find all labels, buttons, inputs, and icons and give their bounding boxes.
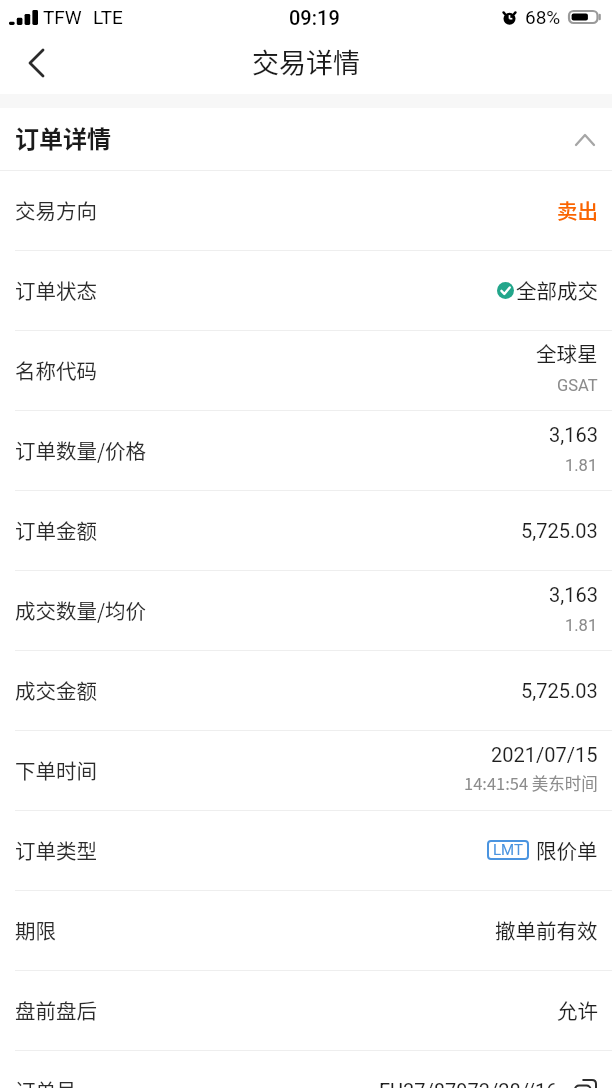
- staticText: 名称代码: [15, 355, 97, 385]
- staticText: 68%: [525, 6, 561, 28]
- staticText: 1.81: [565, 456, 598, 475]
- button[interactable]: Copy order number: [572, 1077, 598, 1088]
- staticText: 订单类型: [15, 835, 97, 865]
- staticText: 2021/07/15: [491, 743, 598, 766]
- button[interactable]: 期限: [0, 891, 612, 971]
- staticText: 1.81: [565, 616, 598, 635]
- staticText: 全球星: [536, 338, 598, 366]
- staticText: 盘前盘后: [15, 995, 97, 1025]
- staticText: GSAT: [557, 376, 598, 395]
- button[interactable]: Back: [0, 34, 60, 94]
- staticText: 09:19: [289, 6, 340, 29]
- staticText: 订单数量/价格: [15, 435, 147, 465]
- button[interactable]: Collapse order details: [563, 118, 607, 162]
- button[interactable]: 成交金额: [0, 651, 612, 731]
- staticText: FU37/87973/28//16: [379, 1079, 558, 1088]
- button[interactable]: 交易方向: [0, 171, 612, 251]
- staticText: 3,163: [549, 583, 598, 606]
- button[interactable]: 订单金额: [0, 491, 612, 571]
- staticText: 下单时间: [15, 755, 97, 785]
- button[interactable]: 订单类型: [0, 811, 612, 891]
- button[interactable]: 订单数量/价格: [0, 411, 612, 491]
- staticText: 成交数量/均价: [15, 595, 147, 625]
- button[interactable]: 盘前盘后: [0, 971, 612, 1051]
- staticText: 期限: [15, 915, 56, 945]
- staticText: 允许: [557, 995, 598, 1025]
- staticText: LTE: [93, 6, 123, 28]
- staticText: 订单状态: [15, 275, 97, 305]
- button[interactable]: 订单号: [0, 1051, 612, 1088]
- staticText: 3,163: [549, 423, 598, 446]
- staticText: 交易详情: [252, 42, 360, 81]
- button[interactable]: 名称代码: [0, 331, 612, 411]
- staticText: 成交金额: [15, 675, 97, 705]
- staticText: 卖出: [557, 195, 598, 225]
- staticText: TFW: [43, 6, 82, 28]
- staticText: 5,725.03: [521, 519, 598, 542]
- staticText: 交易方向: [15, 195, 97, 225]
- button[interactable]: 订单详情: [0, 108, 612, 171]
- staticText: 撤单前有效: [495, 915, 598, 945]
- staticText: 订单金额: [15, 515, 97, 545]
- staticText: 限价单: [536, 835, 598, 865]
- staticText: 订单号: [15, 1075, 77, 1088]
- staticText: 5,725.03: [521, 679, 598, 702]
- staticText: 订单详情: [15, 120, 111, 155]
- staticText: LMT: [493, 841, 523, 859]
- button[interactable]: 下单时间: [0, 731, 612, 811]
- button[interactable]: 成交数量/均价: [0, 571, 612, 651]
- staticText: 全部成交: [516, 275, 598, 305]
- staticText: 14:41:54 美东时间: [464, 771, 598, 795]
- button[interactable]: 订单状态: [0, 251, 612, 331]
